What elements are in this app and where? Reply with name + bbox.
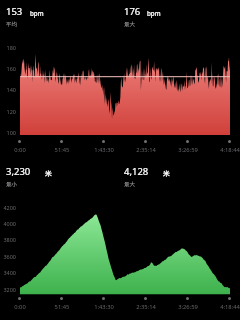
staticText: 120 [0,108,16,115]
staticText: 153 [6,5,23,18]
staticText: 3:26:59 [170,303,206,311]
staticText: 米 [163,170,170,178]
staticText: 160 [0,65,16,72]
staticText: bpm [30,9,44,17]
staticText: 3:26:59 [170,146,206,154]
staticText: 米 [45,170,52,178]
staticText: 最大 [124,181,135,188]
button[interactable]: 153 [3,4,107,30]
staticText: 4:18:44 [212,303,240,311]
staticText: 最小 [6,181,17,188]
button[interactable]: 4,128 [121,164,225,190]
staticText: 0:00 [2,303,38,311]
staticText: 3,230 [6,165,31,178]
staticText: bpm [147,9,161,17]
staticText: 1:43:30 [86,146,122,154]
staticText: 51:45 [44,146,80,154]
staticText: 176 [124,5,141,18]
staticText: 3600 [0,253,16,260]
staticText: 4:18:44 [212,146,240,154]
button[interactable]: 176 [121,4,225,30]
staticText: 平均 [6,21,17,28]
staticText: 140 [0,86,16,93]
staticText: 51:45 [44,303,80,311]
staticText: 3200 [0,286,16,293]
staticText: 4,128 [124,165,149,178]
button[interactable]: 3,230 [3,164,107,190]
staticText: 1:43:30 [86,303,122,311]
staticText: 0:00 [2,146,38,154]
staticText: 最大 [124,21,135,28]
staticText: 4000 [0,220,16,227]
staticText: 3400 [0,269,16,276]
staticText: 180 [0,44,16,51]
staticText: 3800 [0,236,16,243]
staticText: 4200 [0,204,16,211]
other: Workout charts [0,0,240,320]
staticText: 2:35:14 [128,303,164,311]
staticText: 100 [0,129,16,136]
staticText: 2:35:14 [128,146,164,154]
